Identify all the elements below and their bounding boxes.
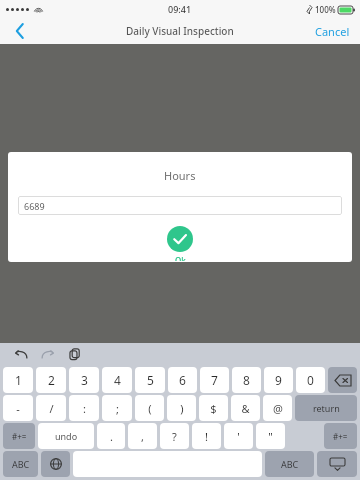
staticText: - [16, 401, 20, 416]
staticText: 4 [114, 372, 121, 388]
staticText: ( [148, 401, 152, 416]
button[interactable]: Cancel [305, 18, 360, 44]
button[interactable]: $ [199, 395, 228, 421]
button[interactable]: 1 [3, 367, 33, 393]
staticText: 7 [211, 372, 218, 388]
staticText: ) [180, 401, 184, 416]
button[interactable]: Undo [14, 347, 28, 361]
staticText: , [141, 429, 144, 444]
button[interactable]: / [36, 395, 66, 421]
button[interactable]: 7 [200, 367, 229, 393]
staticText: : [83, 401, 86, 416]
button[interactable]: 0 [296, 367, 325, 393]
staticText: / [49, 401, 54, 416]
button[interactable]: @ [263, 395, 292, 421]
button[interactable]: 2 [36, 367, 66, 393]
button[interactable]: 8 [232, 367, 261, 393]
button[interactable]: ' [224, 423, 253, 449]
button[interactable]: " [256, 423, 285, 449]
staticText: ? [172, 429, 177, 444]
staticText: 9 [275, 372, 282, 388]
staticText: ; [116, 401, 119, 416]
button[interactable]: Backspace [328, 367, 357, 393]
staticText: . [110, 429, 113, 444]
staticText: #+= [12, 431, 27, 442]
button[interactable]: ( [135, 395, 164, 421]
button[interactable]: ; [102, 395, 132, 421]
button[interactable]: Paste [68, 347, 82, 361]
staticText: Daily Visual Inspection [126, 24, 234, 38]
button[interactable]: Change language [41, 451, 70, 477]
staticText: 8 [243, 372, 250, 388]
button[interactable]: #+= [3, 423, 35, 449]
staticText: 6689 [24, 200, 45, 212]
button[interactable]: , [128, 423, 157, 449]
button[interactable]: ABC [3, 451, 38, 477]
staticText: 09:41 [168, 3, 192, 15]
button[interactable]: & [231, 395, 260, 421]
button[interactable]: 6689 [18, 196, 342, 215]
staticText: 1 [15, 372, 22, 388]
button[interactable]: Redo [41, 347, 55, 361]
staticText: " [268, 429, 273, 444]
staticText: #+= [333, 431, 348, 442]
staticText: ' [237, 429, 240, 444]
button[interactable]: : [69, 395, 99, 421]
staticText: 6 [179, 372, 186, 388]
button[interactable]: Hide keyboard [317, 451, 357, 477]
button[interactable]: return [295, 395, 357, 421]
button[interactable]: #+= [324, 423, 357, 449]
staticText: Cancel [315, 24, 350, 39]
staticText: ABC [281, 458, 299, 470]
staticText: 2 [48, 372, 55, 388]
button[interactable]: 9 [264, 367, 293, 393]
button[interactable]: 3 [69, 367, 99, 393]
staticText: $ [210, 401, 217, 416]
staticText: Ok [175, 255, 186, 261]
staticText: 0 [307, 372, 314, 388]
staticText: 5 [147, 372, 154, 388]
staticText: @ [273, 401, 283, 416]
button[interactable]: ) [167, 395, 196, 421]
button[interactable]: undo [38, 423, 94, 449]
staticText: undo [55, 430, 78, 442]
button[interactable]: ! [192, 423, 221, 449]
button[interactable]: ABC [265, 451, 314, 477]
staticText: return [313, 402, 340, 414]
button[interactable]: ? [160, 423, 189, 449]
button[interactable]: Back [0, 18, 40, 44]
staticText: 100% [315, 4, 336, 15]
button[interactable]: - [3, 395, 33, 421]
staticText: & [241, 401, 250, 416]
staticText: 3 [81, 372, 88, 388]
button[interactable]: 6 [168, 367, 197, 393]
button[interactable]: . [97, 423, 125, 449]
staticText: ABC [12, 458, 30, 470]
button[interactable]: Ok [159, 225, 201, 262]
staticText: ! [205, 429, 208, 444]
button[interactable]: 4 [102, 367, 132, 393]
staticText: Hours [164, 168, 196, 183]
button[interactable]: 5 [135, 367, 165, 393]
